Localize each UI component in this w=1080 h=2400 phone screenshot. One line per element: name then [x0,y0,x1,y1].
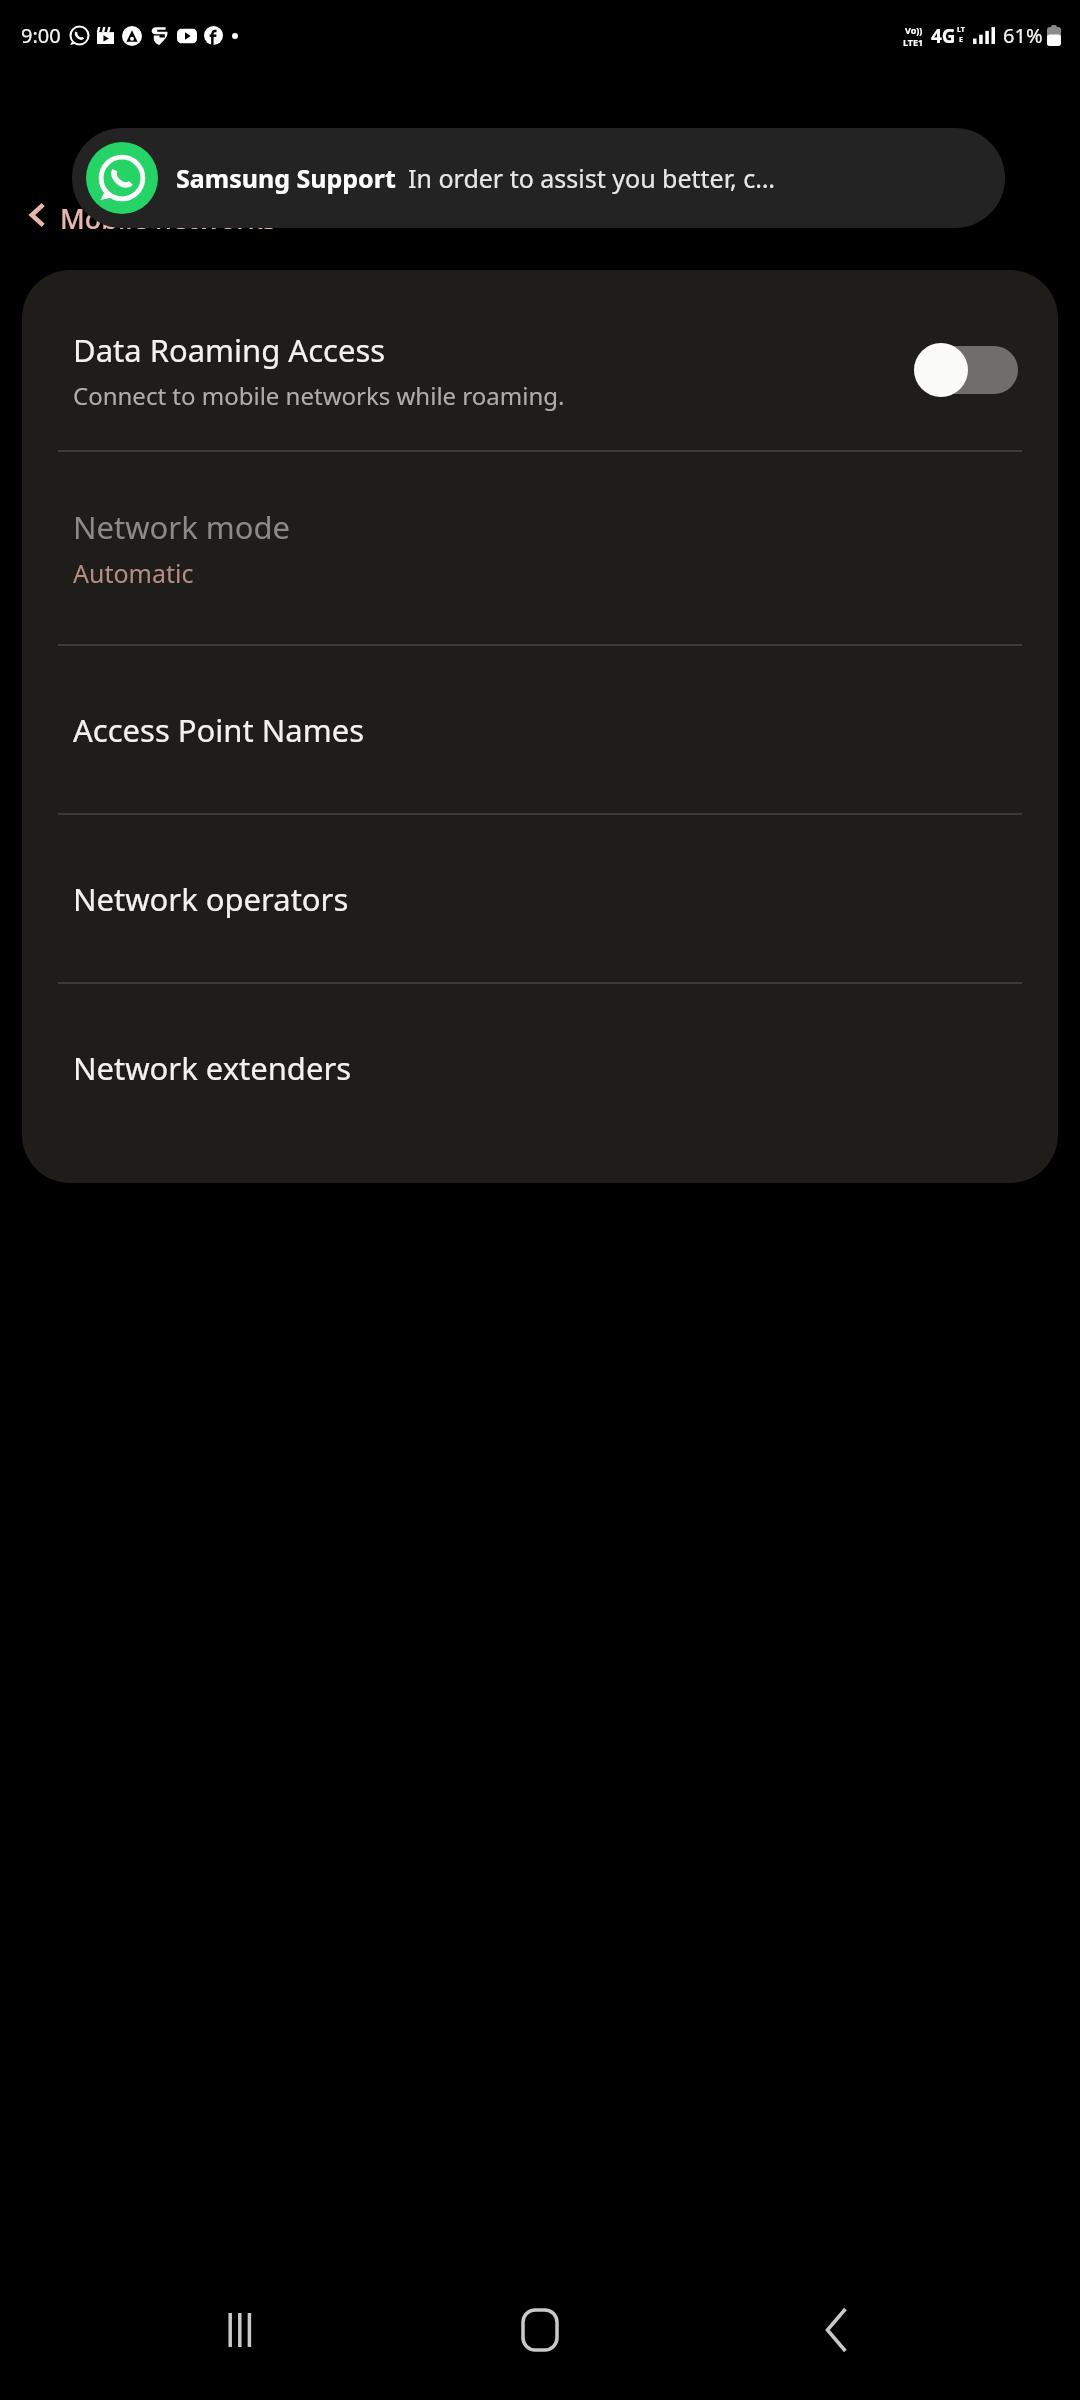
staticText: Samsung Support [176,161,396,195]
button[interactable]: Back [14,191,62,239]
button[interactable]: Recents [189,2276,297,2384]
staticText: LT [957,25,965,35]
staticText: Connect to mobile networks while roaming… [73,379,565,412]
staticText: Access Point Names [73,709,364,751]
button[interactable]: Network extenders [22,984,1058,1151]
button[interactable]: Data Roaming Access [22,290,1058,450]
button[interactable]: Network operators [22,815,1058,982]
staticText: In order to assist you better, c… [408,161,776,195]
staticText: Vo)) [905,24,923,36]
staticText: 4G [931,23,956,49]
staticText: LTE1 [903,36,924,48]
staticText: Mobile networks [60,200,276,237]
button[interactable]: Samsung Support [72,128,1005,228]
staticText: Network mode [73,506,291,548]
staticText: 9:00 [21,22,61,49]
button[interactable]: Back [783,2276,891,2384]
button[interactable]: Access Point Names [22,646,1058,813]
staticText: Network extenders [73,1047,352,1089]
button[interactable]: Data Roaming Access toggle [914,343,1018,397]
staticText: Network operators [73,878,349,920]
staticText: Automatic [73,556,194,590]
staticText: Data Roaming Access [73,329,386,371]
button[interactable]: Home [486,2276,594,2384]
staticText: E [959,35,963,45]
button[interactable]: Network mode [22,452,1058,644]
staticText: 61% [1003,22,1043,49]
